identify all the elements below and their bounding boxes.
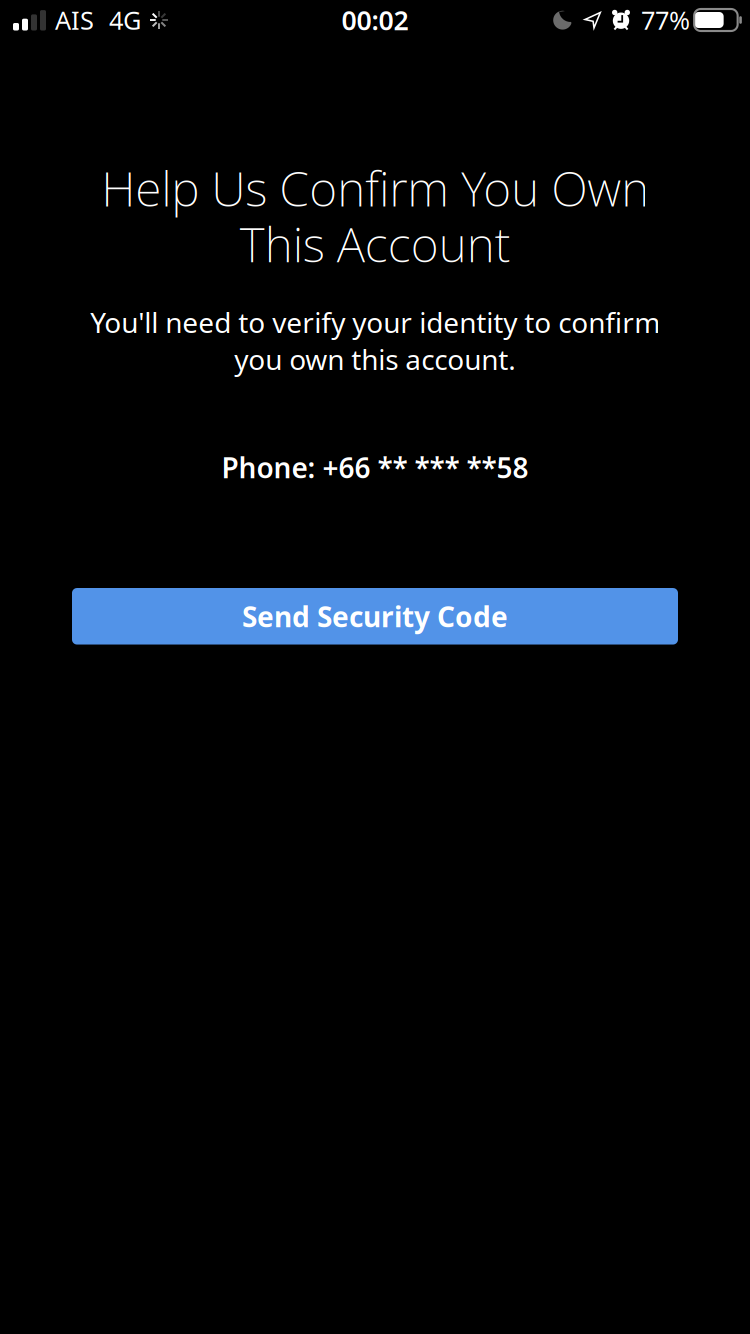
staticText: 4G [109, 3, 141, 37]
staticText: 00:02 [341, 2, 408, 38]
staticText: AIS [55, 3, 94, 37]
staticText: Send Security Code [242, 598, 508, 635]
staticText: Phone: +66 ** *** **58 [221, 449, 528, 486]
staticText: 77% [641, 3, 690, 37]
staticText: Help Us Confirm You Own This Account [101, 156, 649, 275]
staticText: You'll need to verify your identity to c… [90, 303, 660, 378]
button[interactable]: Send Security Code [72, 588, 678, 644]
